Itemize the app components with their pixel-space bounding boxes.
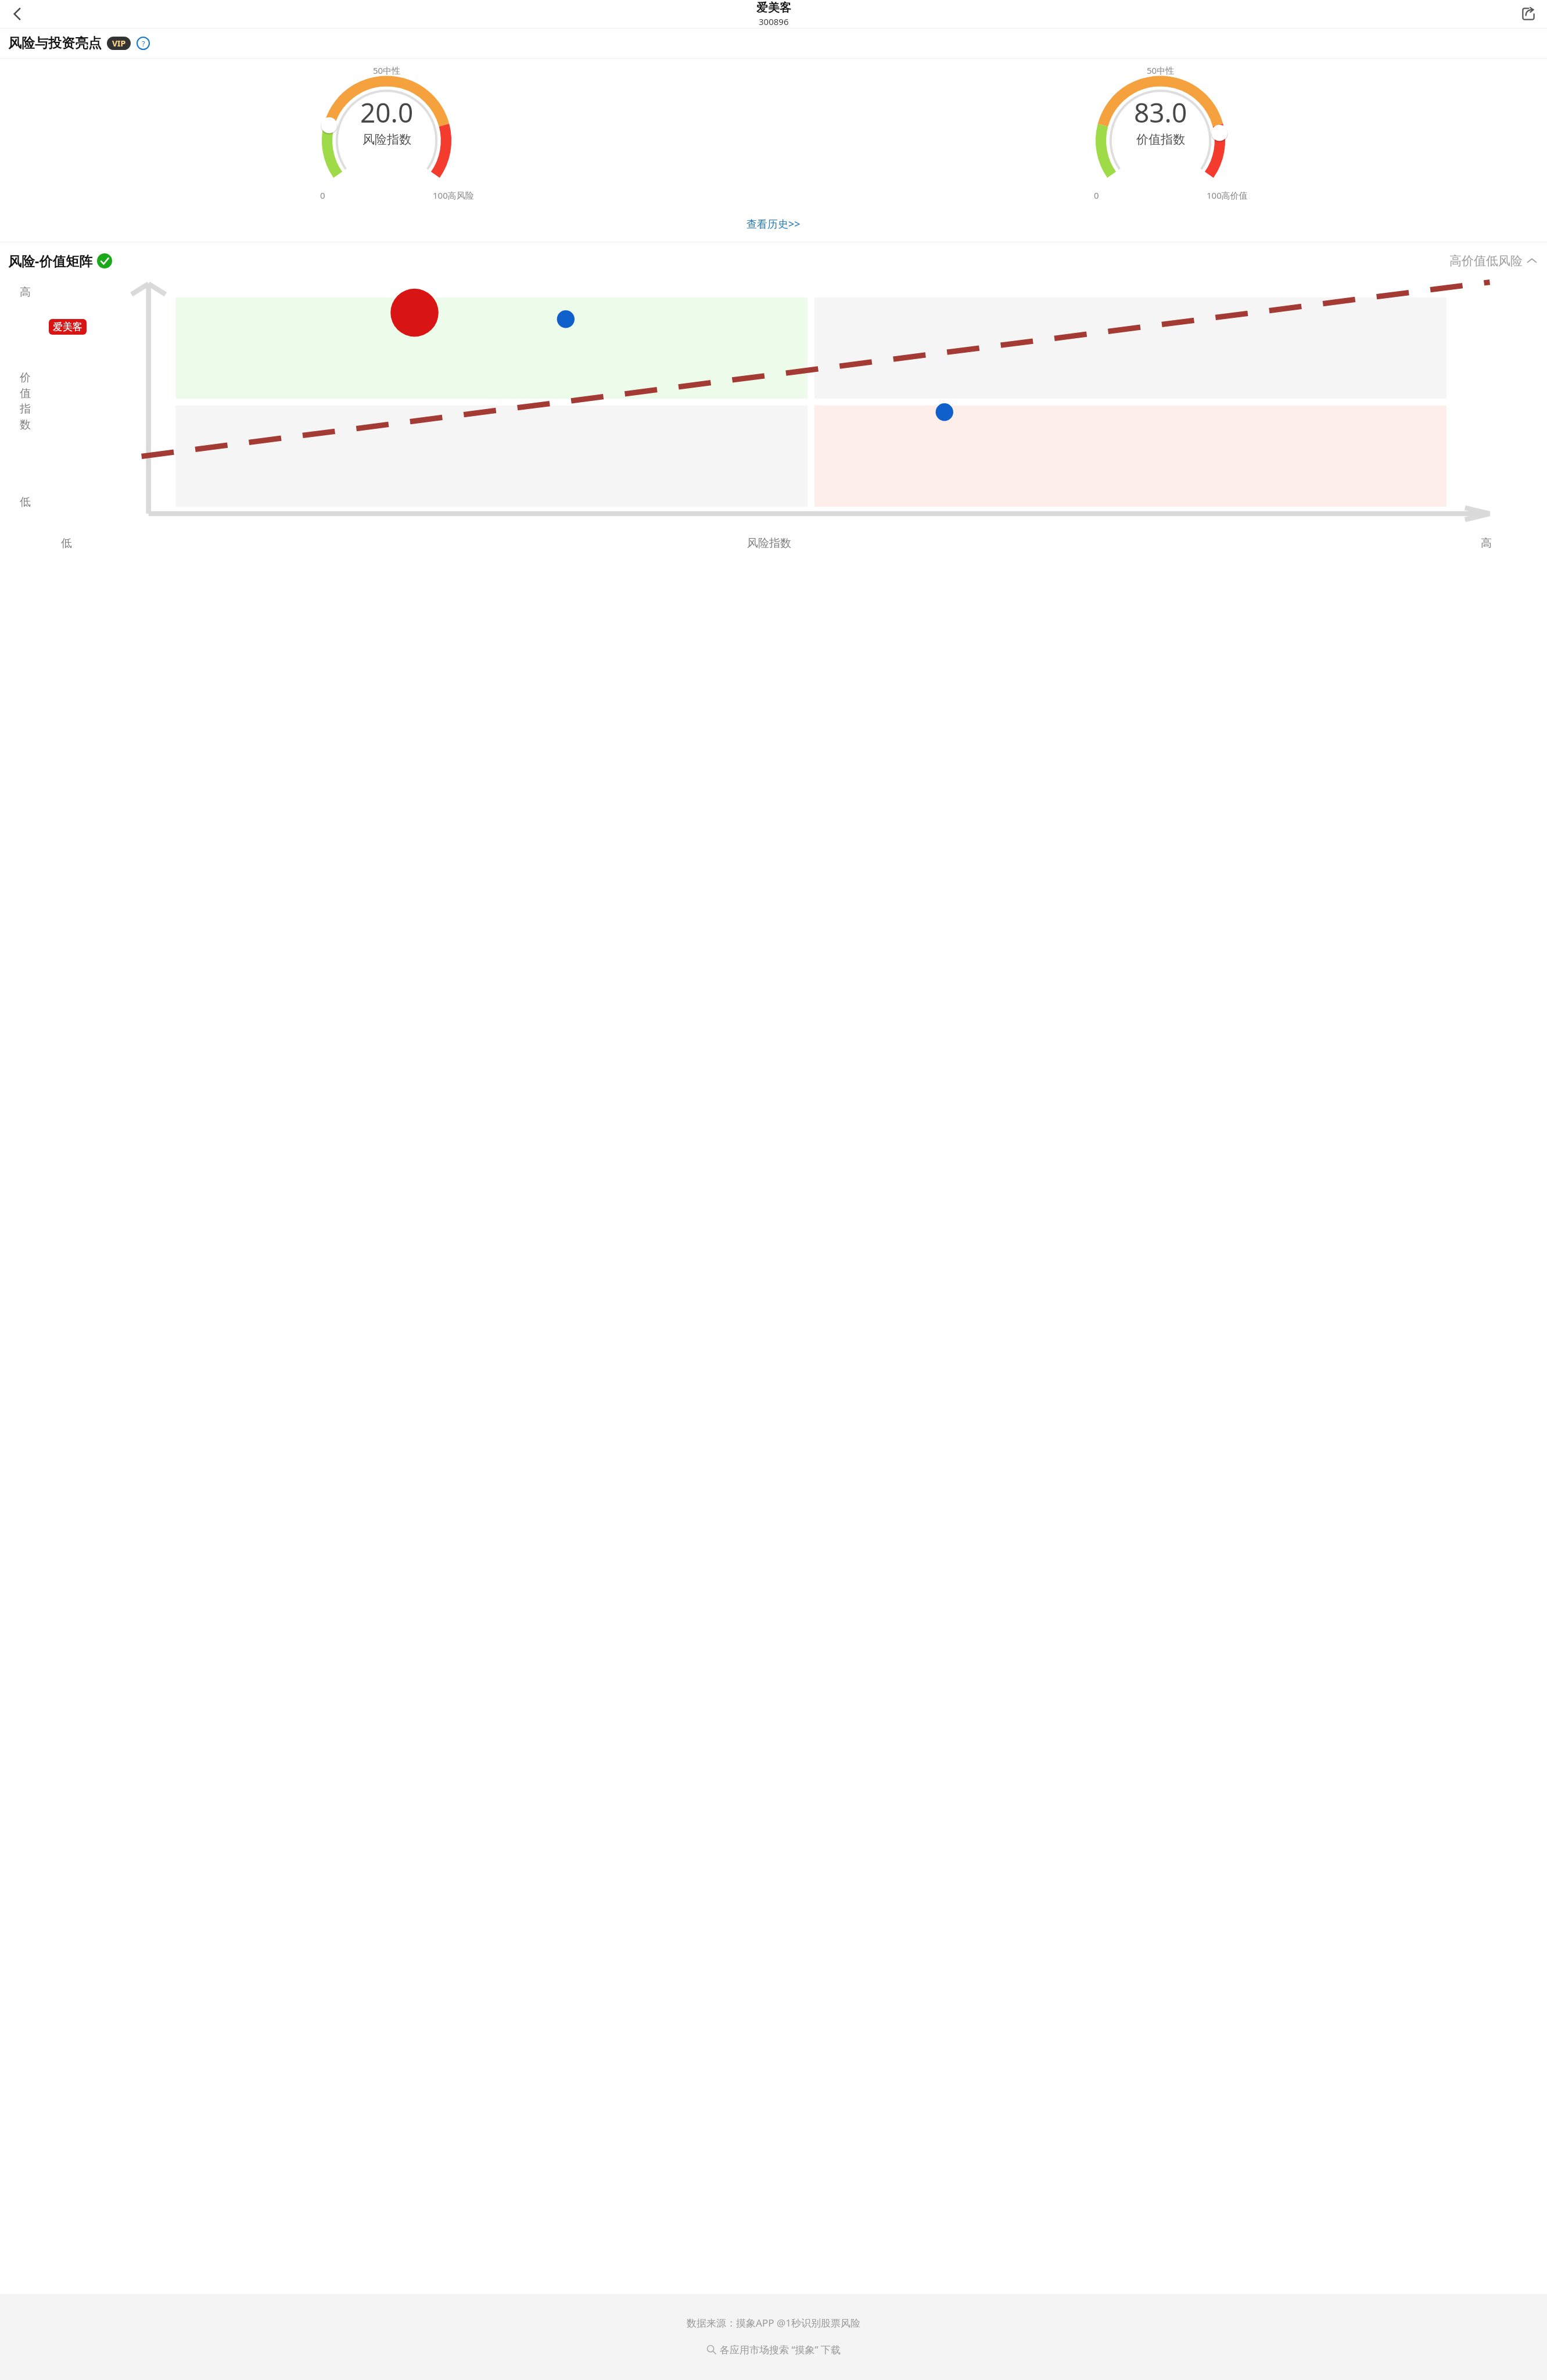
- staticText: 低: [61, 536, 72, 550]
- button[interactable]: Help: [135, 35, 151, 51]
- staticText: 低: [20, 495, 31, 509]
- staticText: 风险-价值矩阵: [8, 252, 93, 270]
- staticText: 50中性: [1147, 64, 1175, 76]
- staticText: VIP: [112, 38, 126, 49]
- staticText: 查看历史>>: [746, 217, 801, 231]
- staticText: 价: [20, 371, 31, 385]
- staticText: 风险指数: [747, 536, 791, 550]
- staticText: 300896: [759, 16, 789, 27]
- staticText: 高价值低风险: [1449, 253, 1523, 268]
- staticText: 爱美客: [53, 321, 82, 333]
- button[interactable]: 查看历史>>: [735, 212, 812, 236]
- button[interactable]: Share: [1516, 1, 1541, 27]
- staticText: 100高价值: [1207, 189, 1248, 201]
- staticText: 高: [20, 285, 31, 299]
- staticText: 83.0: [1134, 94, 1187, 131]
- staticText: 数: [20, 418, 31, 432]
- staticText: 风险指数: [362, 132, 411, 147]
- button[interactable]: VIP: [107, 37, 131, 50]
- staticText: 各应用市场搜索 “摸象” 下载: [720, 2343, 841, 2356]
- staticText: 100高风险: [433, 189, 474, 201]
- staticText: 20.0: [360, 94, 414, 131]
- staticText: 50中性: [373, 64, 401, 76]
- staticText: 0: [1094, 189, 1099, 201]
- staticText: 价值指数: [1136, 132, 1185, 147]
- staticText: 数据来源：摸象APP @1秒识别股票风险: [687, 2316, 860, 2329]
- staticText: 指: [20, 402, 31, 416]
- staticText: 风险与投资亮点: [8, 35, 102, 52]
- staticText: 爱美客: [756, 1, 791, 15]
- button[interactable]: Back: [5, 1, 30, 27]
- staticText: 值: [20, 386, 31, 400]
- button[interactable]: 高价值低风险: [1447, 251, 1539, 271]
- staticText: 0: [320, 189, 325, 201]
- staticText: 高: [1481, 536, 1492, 550]
- staticText: ?: [142, 38, 145, 49]
